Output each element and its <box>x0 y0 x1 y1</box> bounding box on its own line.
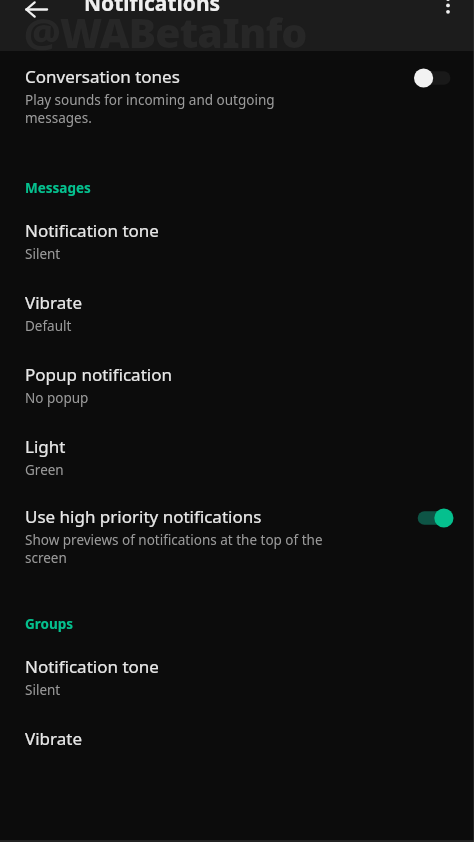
button[interactable]: Vibrate <box>0 291 474 363</box>
button[interactable]: Vibrate <box>0 727 474 750</box>
staticText: Default <box>25 317 72 335</box>
staticText: No popup <box>25 389 89 407</box>
button[interactable]: Back <box>14 0 58 31</box>
staticText: Notification tone <box>25 655 159 678</box>
staticText: Silent <box>25 245 61 263</box>
staticText: Notification tone <box>25 219 159 242</box>
staticText: Vibrate <box>25 291 82 314</box>
staticText: Conversation tones <box>25 65 180 88</box>
button[interactable]: Light <box>0 435 474 505</box>
staticText: Popup notification <box>25 363 172 386</box>
button[interactable]: Use high priority notifications, on <box>416 506 458 530</box>
staticText: Silent <box>25 681 61 699</box>
staticText: Notifications <box>84 0 221 18</box>
staticText: Light <box>25 435 66 458</box>
staticText: Messages <box>25 179 91 197</box>
staticText: Vibrate <box>25 727 82 750</box>
button[interactable]: Notification tone <box>0 197 474 291</box>
button[interactable]: More options <box>428 0 468 25</box>
button[interactable]: Popup notification <box>0 363 474 435</box>
staticText: Green <box>25 461 64 479</box>
staticText: Play sounds for incoming and outgoing me… <box>25 91 275 127</box>
button[interactable]: Conversation tones, off <box>416 66 458 90</box>
button[interactable]: Use high priority notifications <box>0 505 474 615</box>
staticText: Show previews of notifications at the to… <box>25 531 323 567</box>
button[interactable]: Notification tone <box>0 633 474 727</box>
staticText: @WABetaInfo <box>24 4 307 60</box>
button[interactable]: Conversation tones <box>0 51 474 179</box>
staticText: Use high priority notifications <box>25 505 262 528</box>
staticText: Groups <box>25 615 74 633</box>
